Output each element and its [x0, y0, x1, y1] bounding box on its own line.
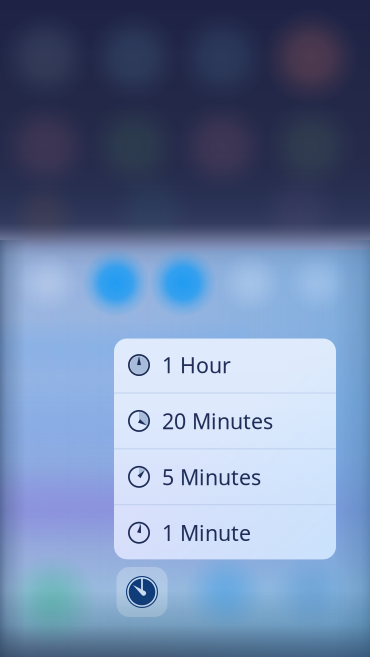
button[interactable]: 5 Minutes: [114, 449, 336, 504]
button[interactable]: 1 Minute: [114, 505, 336, 560]
button[interactable]: Timer: [116, 567, 167, 617]
staticText: 5 Minutes: [162, 463, 261, 491]
staticText: 1 Hour: [162, 351, 231, 379]
button[interactable]: 20 Minutes: [114, 393, 336, 449]
button[interactable]: 1 Hour: [114, 337, 336, 393]
staticText: 1 Minute: [162, 519, 251, 547]
staticText: 20 Minutes: [162, 407, 273, 435]
